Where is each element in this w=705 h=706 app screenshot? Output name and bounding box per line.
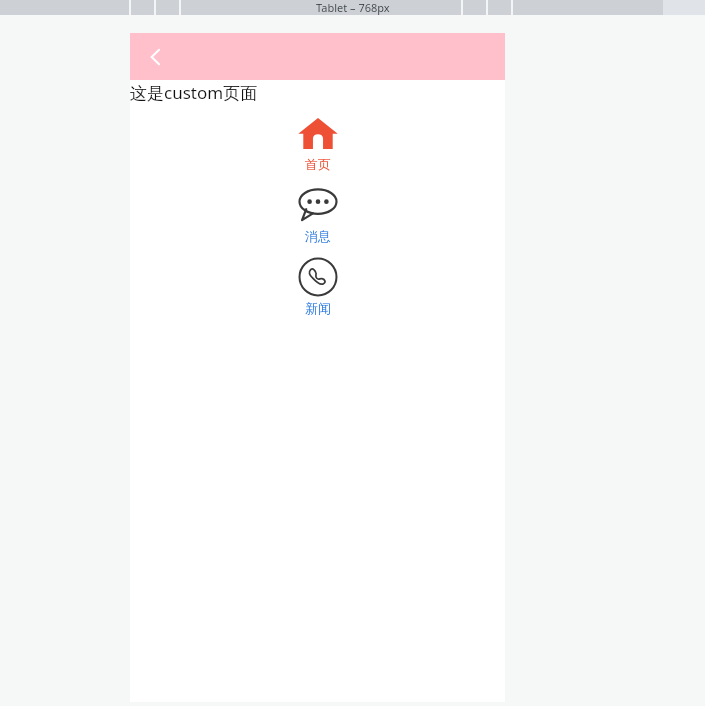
staticText: Tablet – 768px — [316, 0, 390, 15]
staticText: 首页 — [305, 156, 331, 172]
staticText: 这是custom页面 — [130, 81, 258, 104]
button[interactable]: Back — [138, 39, 174, 75]
button[interactable]: Messages — [282, 184, 354, 244]
staticText: 消息 — [305, 228, 331, 244]
staticText: 新闻 — [305, 300, 331, 316]
button[interactable]: News — [282, 256, 354, 316]
button[interactable]: Home — [282, 112, 354, 172]
